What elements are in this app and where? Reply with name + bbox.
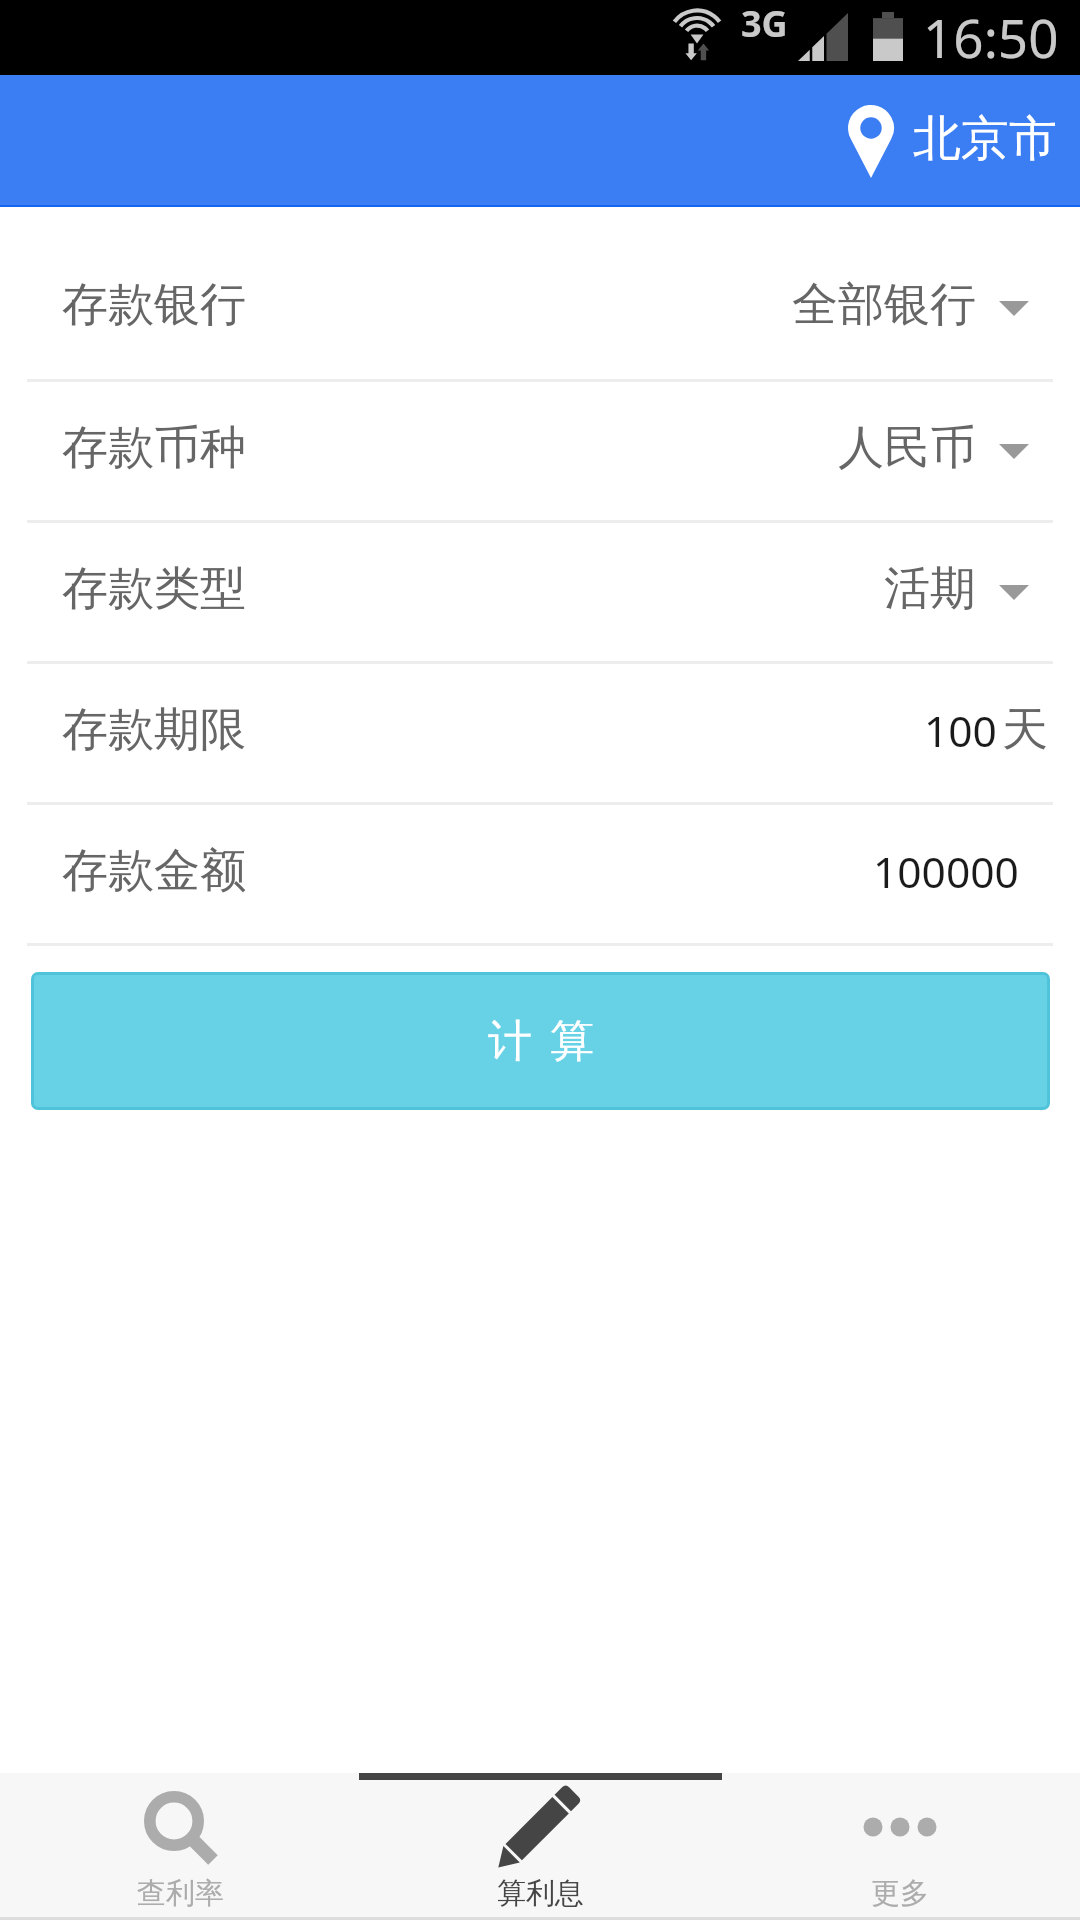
other: 展开 <box>999 301 1029 316</box>
button[interactable]: 计 <box>34 975 1047 1107</box>
button[interactable]: 存款期限 <box>0 664 1080 802</box>
staticText: 人民币 <box>838 419 976 477</box>
staticText: 查利率 <box>137 1875 224 1912</box>
other: 展开 <box>999 444 1029 459</box>
staticText: 16:50 <box>923 1 1059 73</box>
button[interactable]: 更多 <box>720 1773 1080 1920</box>
staticText: 天 <box>1002 701 1048 759</box>
button[interactable]: 存款银行 <box>0 237 1080 379</box>
button[interactable]: 存款类型 <box>0 523 1080 661</box>
staticText: 100000 <box>873 843 1019 901</box>
staticText: 100 <box>924 702 997 760</box>
staticText: 存款金额 <box>62 842 246 900</box>
button[interactable]: 查利率 <box>0 1773 360 1920</box>
staticText: 存款期限 <box>62 701 246 759</box>
staticText: 算 <box>550 1014 594 1069</box>
staticText: 全部银行 <box>792 276 976 334</box>
staticText: 更多 <box>871 1875 929 1912</box>
staticText: 存款类型 <box>62 560 246 618</box>
staticText: 存款银行 <box>62 276 246 334</box>
other: 展开 <box>999 585 1029 600</box>
staticText: 计 <box>488 1014 532 1069</box>
button[interactable]: 存款币种 <box>0 382 1080 520</box>
staticText: 存款币种 <box>62 419 246 477</box>
staticText: 北京市 <box>913 109 1057 169</box>
staticText: 活期 <box>884 560 976 618</box>
button[interactable]: 北京市 <box>808 89 1080 194</box>
button[interactable]: 存款金额 <box>0 805 1080 943</box>
staticText: 3G <box>741 0 788 48</box>
other: 算利息 <box>494 1784 586 1876</box>
other: 更多 <box>854 1784 946 1876</box>
button[interactable]: 算利息 <box>360 1773 720 1920</box>
staticText: 算利息 <box>497 1875 584 1912</box>
other: 查利率 <box>134 1784 226 1876</box>
